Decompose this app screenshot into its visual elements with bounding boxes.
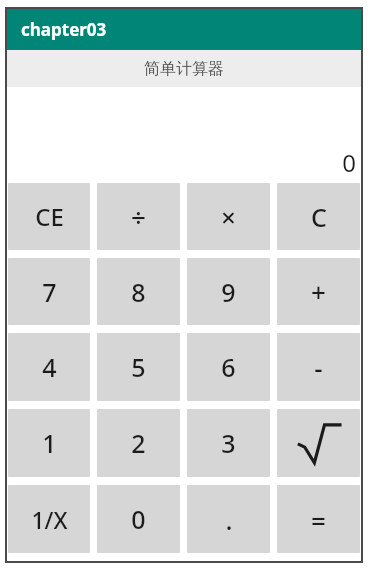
button[interactable]: CE (8, 183, 90, 250)
staticText: ÷ (131, 199, 146, 234)
staticText: × (221, 199, 236, 234)
staticText: 1/X (31, 504, 68, 535)
staticText: 7 (42, 275, 57, 309)
staticText: 8 (131, 275, 146, 309)
button[interactable]: 1 (8, 409, 90, 477)
button[interactable]: Plus (277, 258, 360, 325)
staticText: 0 (342, 146, 356, 179)
button[interactable]: 7 (8, 258, 90, 325)
button[interactable]: 2 (97, 409, 180, 477)
staticText: chapter03 (21, 18, 107, 41)
button[interactable]: Decimal point (187, 485, 270, 553)
staticText: 简单计算器 (144, 59, 224, 79)
button[interactable]: 9 (187, 258, 270, 325)
button[interactable]: Divide (97, 183, 180, 250)
button[interactable]: Multiply (187, 183, 270, 250)
button[interactable]: 5 (97, 333, 180, 401)
button[interactable]: 8 (97, 258, 180, 325)
staticText: 6 (221, 350, 236, 384)
button[interactable]: 3 (187, 409, 270, 477)
staticText: . (225, 502, 233, 537)
staticText: 5 (131, 350, 146, 384)
button[interactable]: Minus (277, 333, 360, 401)
button[interactable]: 1/X (8, 485, 90, 553)
staticText: 4 (42, 350, 57, 384)
staticText: + (311, 274, 326, 309)
staticText: CE (35, 200, 64, 233)
button[interactable]: Equals (277, 485, 360, 553)
staticText: 1 (42, 426, 57, 460)
button[interactable]: 4 (8, 333, 90, 401)
button[interactable]: 0 (97, 485, 180, 553)
staticText: 0 (131, 502, 146, 536)
button[interactable]: chapter03 (7, 9, 361, 50)
staticText: C (311, 200, 327, 234)
button[interactable]: C (277, 183, 360, 250)
staticText: = (311, 502, 326, 537)
staticText: 2 (131, 426, 146, 460)
staticText: - (314, 350, 323, 385)
staticText: 3 (221, 426, 236, 460)
staticText: 9 (221, 275, 236, 309)
button[interactable]: 6 (187, 333, 270, 401)
button[interactable]: Square root (277, 409, 360, 477)
